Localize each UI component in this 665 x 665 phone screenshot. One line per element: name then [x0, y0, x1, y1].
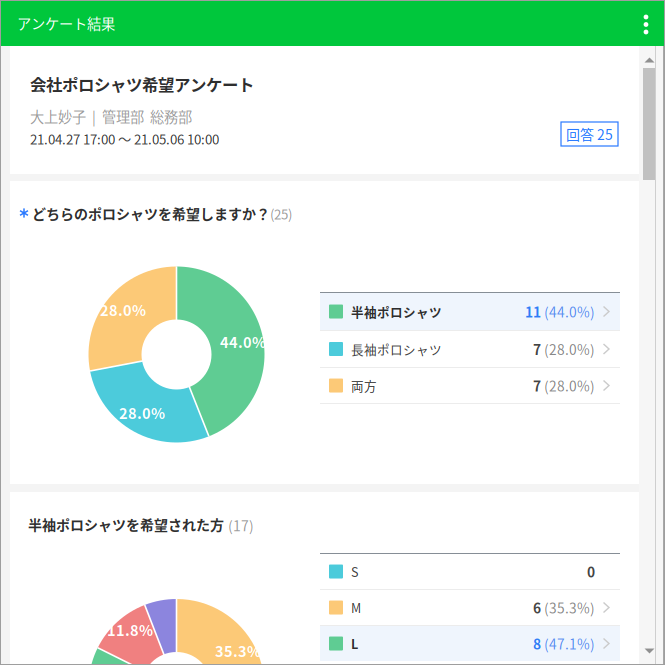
button[interactable]: More options [632, 0, 660, 46]
staticText: アンケート結果 [17, 13, 115, 34]
staticText: (47.1%) [541, 633, 595, 653]
button[interactable]: 半袖ポロシャツ [320, 293, 620, 330]
staticText: 28.0% [100, 299, 146, 320]
staticText: S [351, 562, 359, 581]
staticText: 7 [533, 339, 541, 359]
staticText: 会社ポロシャツ希望アンケート [30, 72, 254, 96]
button[interactable]: L [320, 626, 620, 661]
staticText: 35.3% [215, 640, 261, 661]
button[interactable]: 長袖ポロシャツ [320, 331, 620, 367]
staticText: 21.04.27 17:00 ～ 21.05.06 10:00 [30, 129, 219, 148]
staticText: (28.0%) [541, 339, 595, 359]
staticText: 6 [533, 597, 541, 617]
staticText: 11 [525, 301, 541, 321]
staticText: 44.0% [220, 331, 266, 352]
button[interactable]: 回答 25 [561, 122, 618, 146]
staticText: (25) [270, 204, 292, 223]
staticText: どちらのポロシャツを希望しますか？ [32, 203, 270, 223]
staticText: M [351, 598, 361, 617]
staticText: 大上妙子 | 管理部 総務部 [30, 106, 192, 127]
staticText: (44.0%) [541, 301, 595, 321]
staticText: 長袖ポロシャツ [351, 340, 442, 358]
staticText: (28.0%) [541, 375, 595, 395]
staticText: (17) [228, 515, 254, 535]
button[interactable]: 両方 [320, 368, 620, 403]
staticText: 半袖ポロシャツ [351, 302, 442, 321]
staticText: 半袖ポロシャツを希望された方 [28, 514, 224, 534]
button[interactable]: M [320, 590, 620, 625]
staticText: L [351, 634, 358, 653]
staticText: 両方 [351, 376, 377, 395]
button[interactable]: S [320, 554, 620, 589]
staticText: 回答 25 [566, 124, 613, 144]
staticText: 8 [533, 633, 541, 653]
staticText: 28.0% [119, 402, 165, 423]
staticText: (35.3%) [541, 597, 595, 617]
staticText: 0 [587, 561, 595, 581]
staticText: 11.8% [107, 619, 153, 640]
staticText: 7 [533, 375, 541, 395]
